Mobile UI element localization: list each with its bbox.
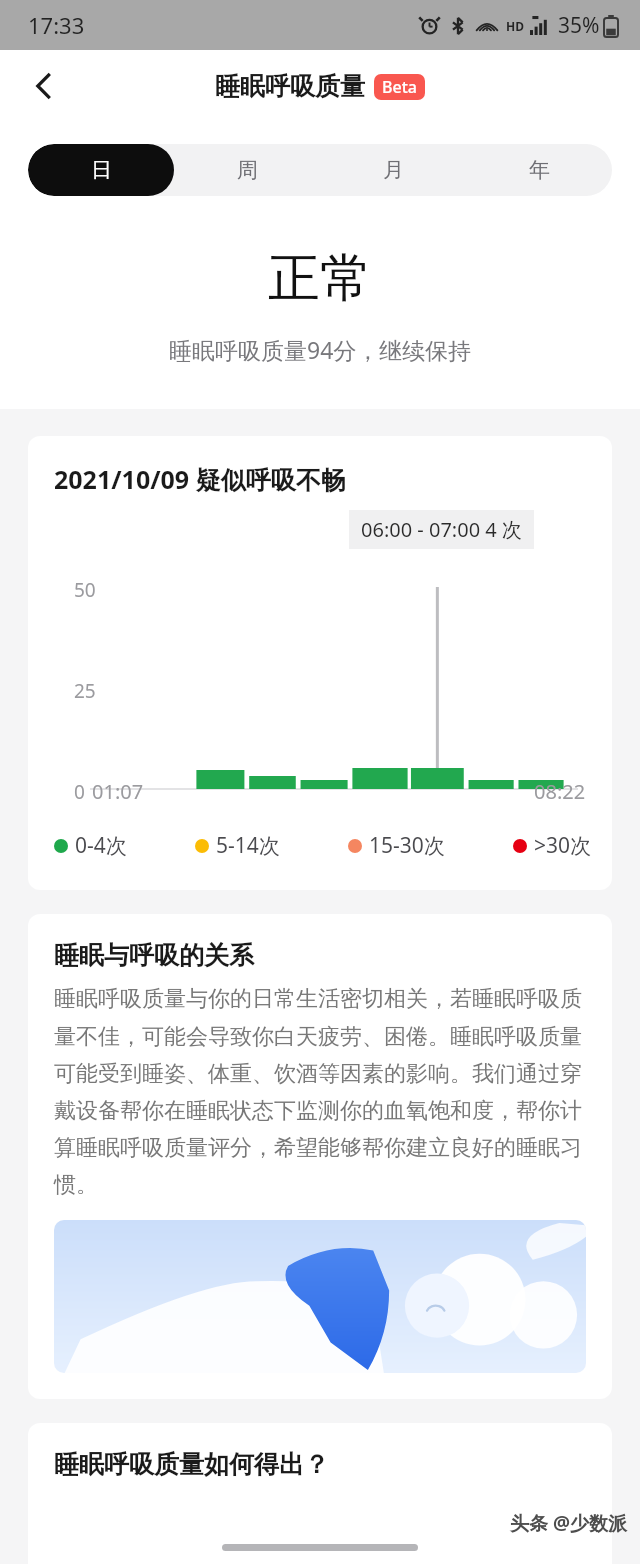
staticText: 01:07 — [92, 778, 144, 805]
button[interactable]: Back — [16, 58, 72, 114]
staticText: Beta — [382, 76, 417, 98]
staticText: 0 — [74, 779, 85, 805]
staticText: 睡眠呼吸质量 — [215, 71, 365, 102]
staticText: 5-14次 — [216, 831, 280, 860]
staticText: 睡眠呼吸质量如何得出？ — [54, 1449, 329, 1480]
staticText: 2021/10/09 疑似呼吸不畅 — [54, 462, 346, 496]
staticText: 0-4次 — [75, 831, 127, 860]
staticText: 15-30次 — [369, 831, 445, 860]
staticText: 头条 @少数派 — [510, 1510, 628, 1536]
staticText: HD — [506, 18, 524, 34]
staticText: 08:22 — [534, 778, 586, 805]
staticText: 日 — [91, 157, 112, 183]
staticText: 周 — [237, 157, 258, 183]
staticText: 睡眠与呼吸的关系 — [54, 940, 254, 971]
button[interactable]: 月 — [320, 144, 466, 196]
staticText: 睡眠呼吸质量94分，继续保持 — [169, 334, 472, 365]
staticText: 正常 — [268, 246, 372, 312]
button[interactable]: 周 — [174, 144, 320, 196]
staticText: 06:00 - 07:00 4 次 — [361, 516, 522, 543]
staticText: 17:33 — [28, 10, 85, 40]
staticText: 50 — [74, 577, 96, 603]
staticText: 睡眠呼吸质量与你的日常生活密切相关，若睡眠呼吸质量不佳，可能会导致你白天疲劳、困… — [54, 985, 586, 1198]
staticText: 25 — [74, 678, 96, 704]
button[interactable]: 日 — [28, 144, 174, 196]
staticText: 月 — [383, 157, 404, 183]
staticText: 年 — [529, 157, 550, 183]
staticText: 35% — [558, 11, 600, 40]
staticText: >30次 — [534, 831, 592, 860]
button[interactable]: 年 — [466, 144, 612, 196]
